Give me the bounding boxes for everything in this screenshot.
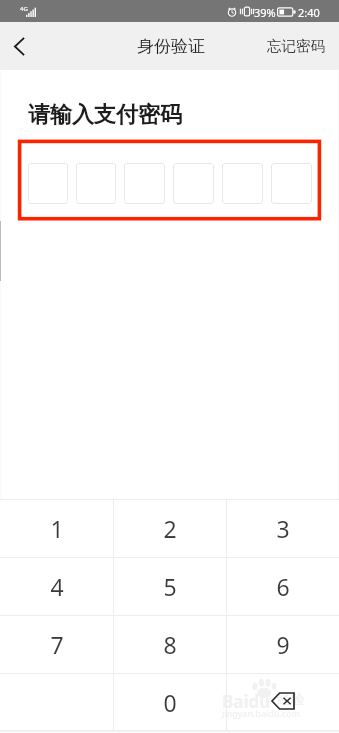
staticText: jingyan.baidu.com <box>222 707 300 719</box>
staticText: 39% <box>254 5 276 20</box>
staticText: 5 <box>163 571 177 602</box>
button[interactable]: 8 <box>114 616 226 673</box>
other: Delete <box>271 692 295 710</box>
staticText: 请输入支付密码 <box>28 101 182 129</box>
button[interactable] <box>124 163 165 204</box>
button[interactable] <box>222 163 263 204</box>
staticText: 2 <box>163 513 177 544</box>
staticText: 经验 <box>277 691 305 709</box>
button[interactable]: 5 <box>114 558 226 615</box>
staticText: Baidu <box>222 690 271 713</box>
button[interactable]: Back <box>0 22 38 70</box>
button[interactable] <box>28 163 68 204</box>
button[interactable]: Delete <box>227 674 339 730</box>
staticText: 2:40 <box>298 5 320 20</box>
staticText: 忘记密码 <box>267 37 325 55</box>
button[interactable]: 忘记密码 <box>251 22 339 70</box>
button[interactable]: 6 <box>227 558 339 615</box>
button[interactable]: 1 <box>0 500 113 557</box>
button[interactable]: 9 <box>227 616 339 673</box>
staticText: 0 <box>163 687 177 718</box>
staticText: 3 <box>276 513 290 544</box>
button[interactable]: 7 <box>0 616 113 673</box>
button[interactable] <box>76 163 116 204</box>
button[interactable]: 2 <box>114 500 226 557</box>
button[interactable]: 3 <box>227 500 339 557</box>
staticText: 4 <box>50 571 64 602</box>
staticText: 8 <box>163 629 177 660</box>
button[interactable]: 0 <box>114 674 226 730</box>
staticText: 1 <box>50 513 64 544</box>
staticText: 6 <box>276 571 290 602</box>
button[interactable]: 4 <box>0 558 113 615</box>
button[interactable] <box>271 163 312 204</box>
staticText: 4G <box>20 5 28 13</box>
button[interactable] <box>173 163 214 204</box>
staticText: 9 <box>276 629 290 660</box>
staticText: 7 <box>50 629 64 660</box>
staticText: 身份验证 <box>137 36 205 57</box>
